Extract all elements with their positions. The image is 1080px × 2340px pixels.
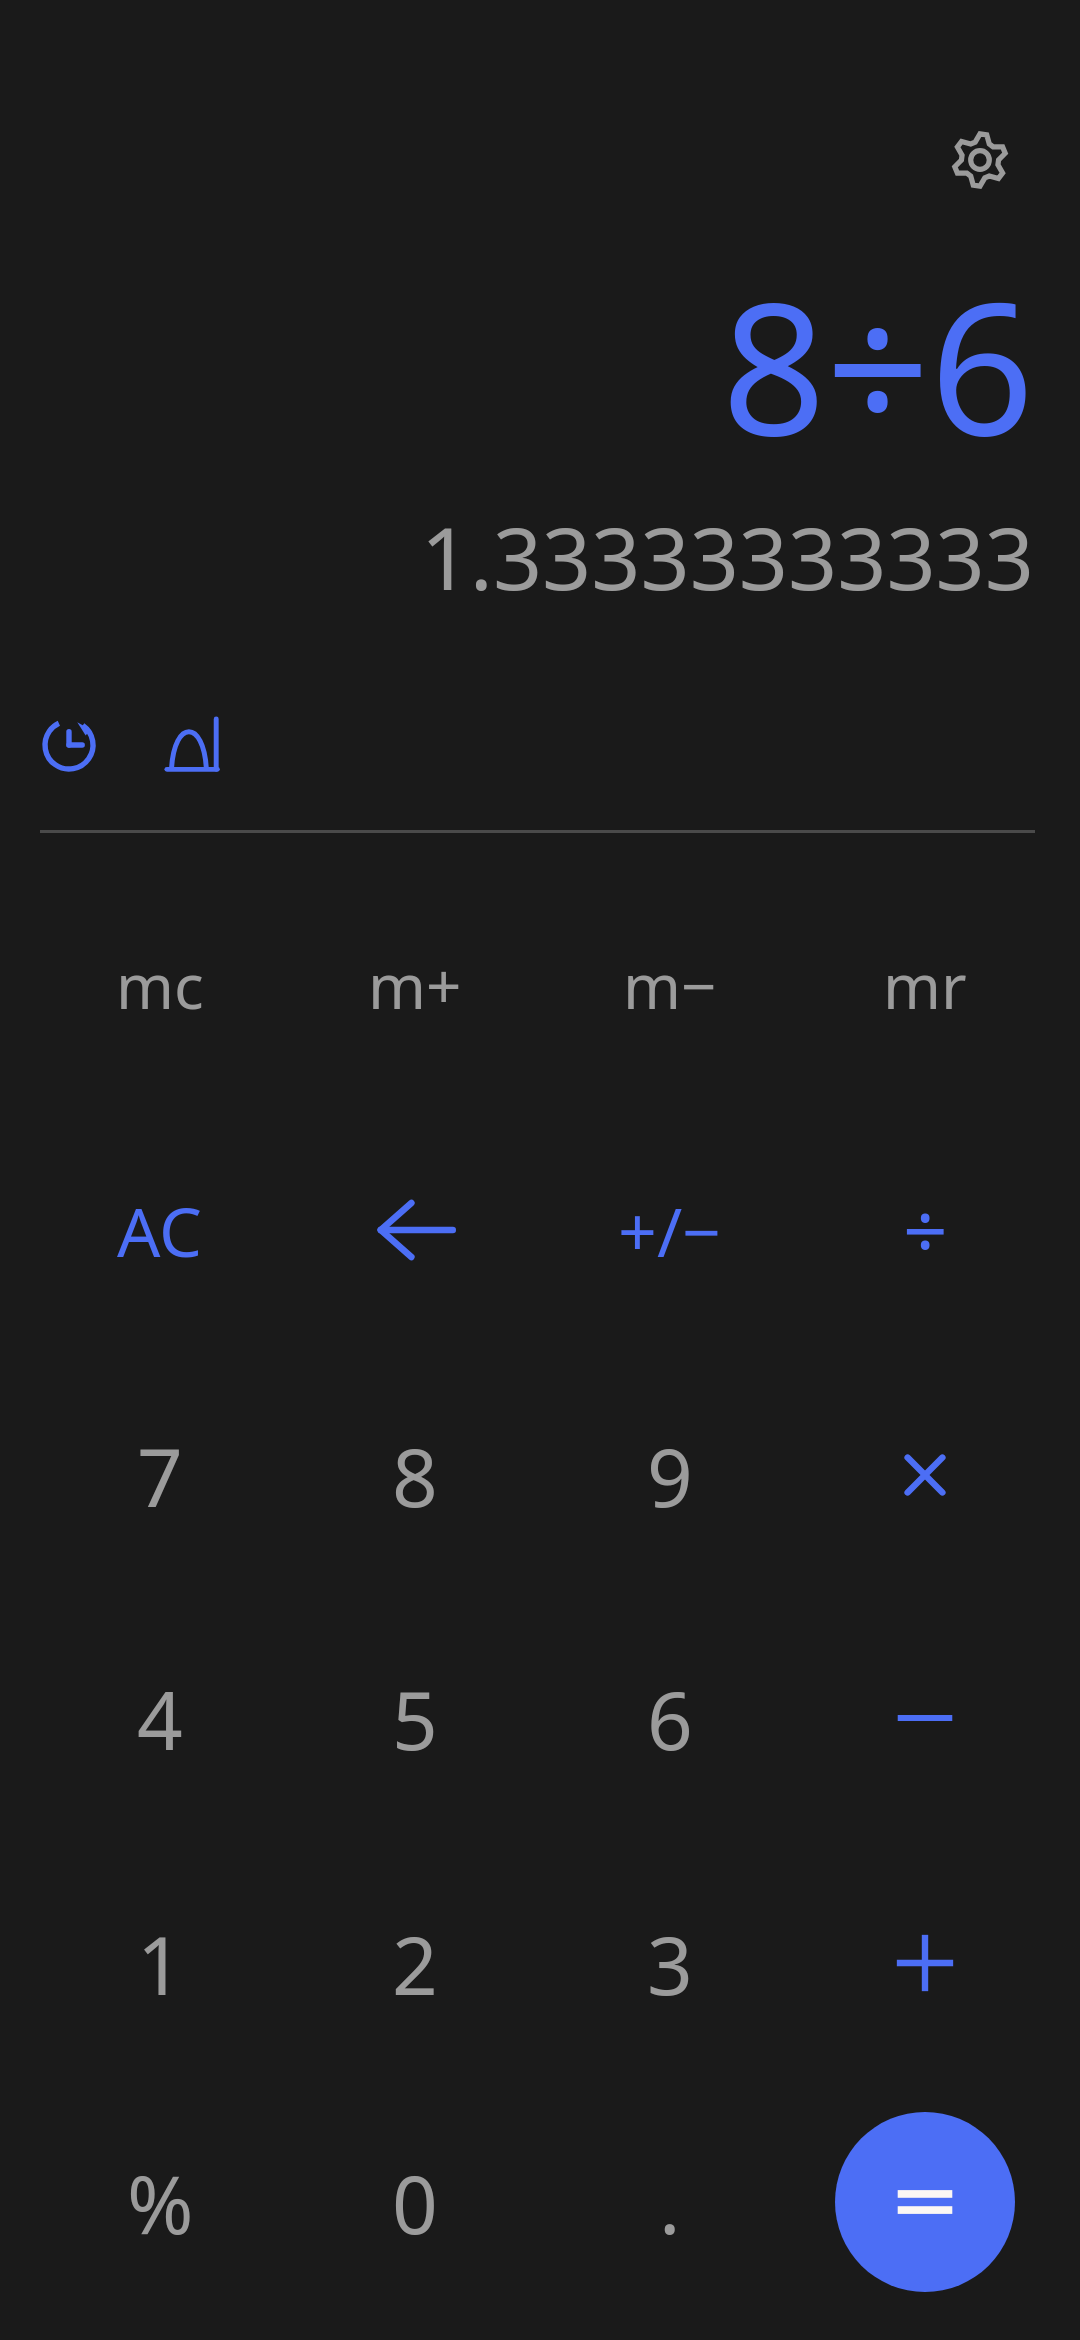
button[interactable]: ÷ xyxy=(820,1125,1030,1335)
staticText: 5 xyxy=(392,1664,438,1773)
staticText: AC xyxy=(117,1184,203,1277)
button[interactable]: 3 xyxy=(565,1858,775,2068)
staticText: . xyxy=(659,2148,681,2257)
button[interactable]: 4 xyxy=(55,1613,265,1823)
staticText: mc xyxy=(116,943,204,1027)
staticText: 0 xyxy=(392,2148,438,2257)
button[interactable]: Minus xyxy=(820,1613,1030,1823)
button[interactable]: 7 xyxy=(55,1370,265,1580)
button[interactable]: 8 xyxy=(310,1370,520,1580)
staticText: +/− xyxy=(618,1184,722,1277)
staticText: 4 xyxy=(137,1664,183,1773)
staticText: 9 xyxy=(647,1421,693,1530)
button[interactable]: m+ xyxy=(310,880,520,1090)
button[interactable]: 6 xyxy=(565,1613,775,1823)
button[interactable]: mr xyxy=(820,880,1030,1090)
button[interactable]: 9 xyxy=(565,1370,775,1580)
button[interactable]: Plus xyxy=(820,1858,1030,2068)
staticText: m− xyxy=(623,943,717,1027)
staticText: 8÷6 xyxy=(0,240,1034,488)
button[interactable]: 5 xyxy=(310,1613,520,1823)
button[interactable]: % xyxy=(55,2097,265,2307)
staticText: 3 xyxy=(647,1909,693,2018)
button[interactable]: . xyxy=(565,2097,775,2307)
button[interactable]: +/− xyxy=(565,1125,775,1335)
button[interactable]: m− xyxy=(565,880,775,1090)
staticText: ÷ xyxy=(903,1177,948,1283)
staticText: 2 xyxy=(392,1909,438,2018)
staticText: 7 xyxy=(137,1421,183,1530)
button[interactable]: Backspace xyxy=(310,1125,520,1335)
button[interactable]: Settings xyxy=(930,110,1030,210)
staticText: 6 xyxy=(647,1664,693,1773)
staticText: 8 xyxy=(392,1421,438,1530)
staticText: % xyxy=(127,2148,194,2257)
staticText: 1.33333333333 xyxy=(0,498,1034,615)
button[interactable]: 0 xyxy=(310,2097,520,2307)
button[interactable]: Equals xyxy=(835,2112,1015,2292)
button[interactable]: 1 xyxy=(55,1858,265,2068)
button[interactable]: 2 xyxy=(310,1858,520,2068)
staticText: mr xyxy=(883,943,967,1027)
button[interactable]: Multiply xyxy=(820,1370,1030,1580)
button[interactable]: mc xyxy=(55,880,265,1090)
staticText: 1 xyxy=(137,1909,183,2018)
button[interactable]: History xyxy=(14,690,124,800)
button[interactable]: AC xyxy=(55,1125,265,1335)
staticText: m+ xyxy=(368,943,462,1027)
button[interactable]: Graph xyxy=(138,690,248,800)
